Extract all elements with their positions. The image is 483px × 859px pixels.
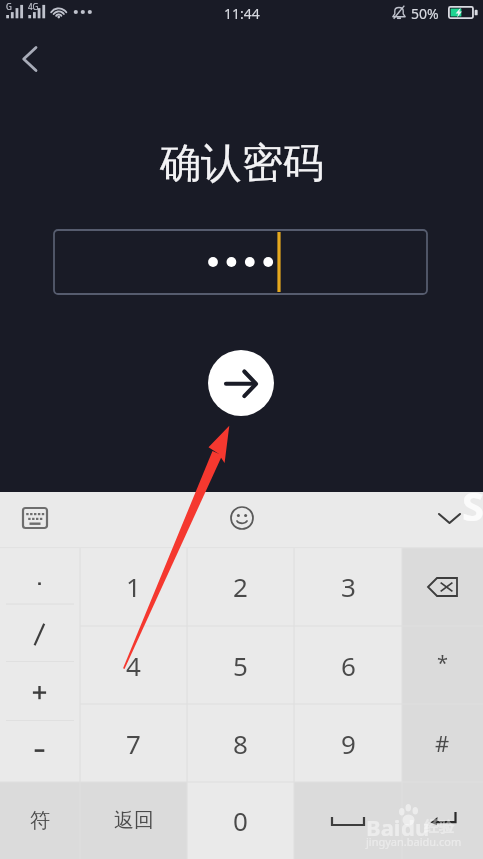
button[interactable]: Slash	[0, 606, 80, 665]
staticText: 确认密码	[160, 138, 324, 190]
staticText: 9	[341, 726, 356, 761]
staticText: 50%	[411, 4, 439, 23]
button[interactable]: Period	[0, 547, 80, 606]
button[interactable]: Hide keyboard	[426, 495, 472, 541]
button[interactable]: *	[402, 626, 483, 704]
staticText: 8	[233, 726, 248, 761]
button[interactable]: Emoji	[219, 495, 265, 541]
button[interactable]: Next	[208, 350, 274, 416]
staticText: 11:44	[224, 4, 260, 23]
button[interactable]: Enter	[402, 782, 483, 859]
staticText: 4G	[28, 1, 39, 12]
button[interactable]: 0	[187, 782, 294, 859]
button[interactable]: 2	[187, 547, 294, 626]
staticText: *	[437, 649, 449, 676]
staticText: 符	[30, 808, 50, 833]
staticText: 2	[233, 569, 248, 604]
button[interactable]: Minus	[0, 723, 80, 782]
button[interactable]: Back	[7, 37, 52, 82]
staticText: G	[6, 1, 12, 12]
staticText: S	[462, 492, 483, 532]
staticText: 经验	[424, 818, 454, 837]
staticText: 3	[341, 569, 356, 604]
staticText: 返回	[114, 808, 154, 833]
button[interactable]: Space	[294, 782, 402, 859]
button[interactable]: 返回	[80, 782, 187, 859]
staticText: 5	[233, 648, 248, 683]
staticText: 4	[126, 648, 141, 683]
staticText: Bai	[366, 812, 401, 842]
staticText: 0	[233, 803, 248, 838]
button[interactable]	[53, 229, 428, 295]
button[interactable]: 6	[294, 626, 402, 704]
button[interactable]: Backspace	[402, 547, 483, 626]
button[interactable]: 7	[80, 704, 187, 782]
button[interactable]: 9	[294, 704, 402, 782]
button[interactable]: Plus	[0, 665, 80, 724]
staticText: du	[401, 812, 430, 842]
button[interactable]: 8	[187, 704, 294, 782]
button[interactable]: #	[402, 704, 483, 782]
button[interactable]: 5	[187, 626, 294, 704]
button[interactable]: Switch keyboard	[12, 495, 58, 541]
staticText: 7	[126, 726, 141, 761]
staticText: #	[435, 728, 450, 758]
staticText: 6	[341, 648, 356, 683]
button[interactable]: 3	[294, 547, 402, 626]
button[interactable]: 符	[0, 782, 80, 859]
staticText: 1	[126, 569, 141, 604]
button[interactable]: 1	[80, 547, 187, 626]
button[interactable]: 4	[80, 626, 187, 704]
staticText: jingyan.baidu.com	[366, 834, 462, 849]
